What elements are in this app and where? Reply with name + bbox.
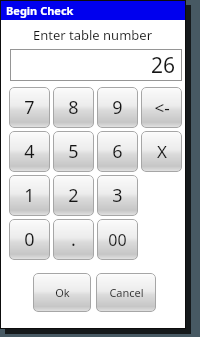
button[interactable]: 8 (53, 87, 94, 128)
staticText: <- (154, 96, 170, 119)
button[interactable]: 1 (9, 175, 50, 216)
button[interactable]: 2 (53, 175, 94, 216)
button[interactable]: . (53, 219, 94, 260)
button[interactable]: 0 (9, 219, 50, 260)
staticText: 2 (68, 183, 79, 208)
button[interactable]: Cancel (96, 273, 156, 312)
staticText: 6 (112, 139, 123, 164)
staticText: 1 (24, 183, 35, 208)
button[interactable]: Ok (33, 273, 91, 312)
button[interactable]: 5 (53, 131, 94, 172)
staticText: X (157, 140, 167, 163)
staticText: 3 (112, 183, 123, 208)
staticText: Begin Check (6, 3, 74, 18)
staticText: 9 (112, 95, 123, 120)
staticText: 5 (68, 139, 79, 164)
button[interactable]: 4 (9, 131, 50, 172)
staticText: 00 (108, 229, 127, 251)
staticText: . (71, 227, 76, 252)
button[interactable]: 00 (97, 219, 138, 260)
button[interactable]: 3 (97, 175, 138, 216)
staticText: Enter table number (33, 26, 153, 44)
button[interactable]: 9 (97, 87, 138, 128)
staticText: 4 (24, 139, 35, 164)
button[interactable]: 6 (97, 131, 138, 172)
staticText: Ok (55, 285, 70, 300)
staticText: 7 (24, 95, 35, 120)
staticText: 26 (151, 51, 176, 80)
button[interactable]: Backspace (141, 87, 182, 128)
button[interactable]: Clear (141, 131, 182, 172)
staticText: Cancel (109, 285, 144, 300)
staticText: 0 (24, 227, 35, 252)
staticText: 8 (68, 95, 79, 120)
button[interactable]: 7 (9, 87, 50, 128)
button[interactable]: 26 (10, 49, 182, 81)
